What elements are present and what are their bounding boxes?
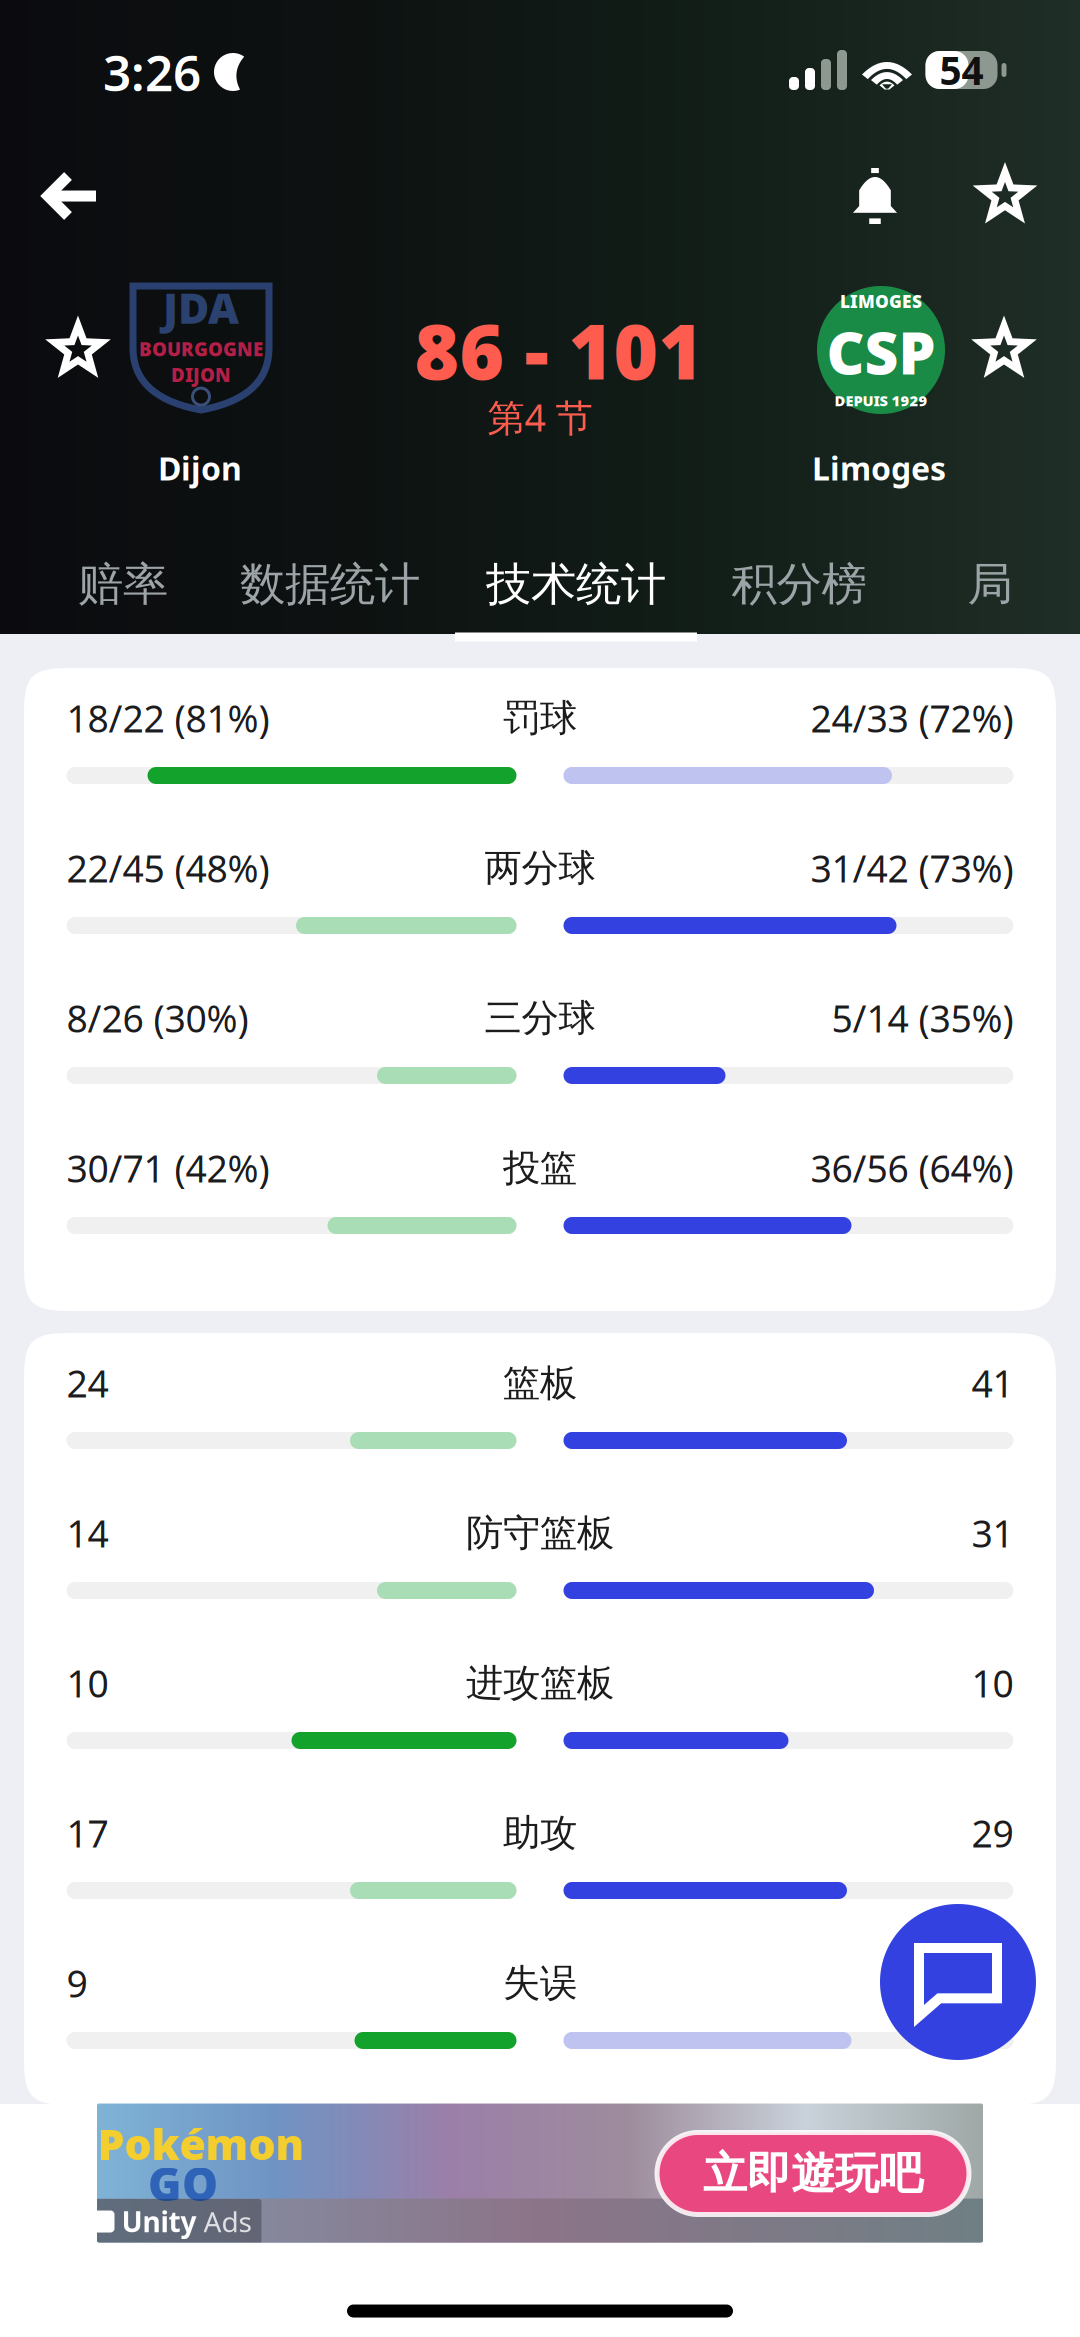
- staticText: 86 - 101: [414, 299, 703, 400]
- staticText: 18/22 (81%): [66, 693, 269, 743]
- staticText: Pokémon: [97, 2115, 304, 2172]
- staticText: JDA: [163, 279, 239, 336]
- staticText: 22/45 (48%): [66, 843, 269, 893]
- staticText: 罚球: [503, 695, 577, 741]
- staticText: GO: [148, 2153, 218, 2214]
- staticText: 技术统计: [486, 557, 666, 612]
- staticText: 5/14 (35%): [831, 993, 1013, 1043]
- staticText: Ads: [203, 2203, 251, 2240]
- button[interactable]: Back: [14, 142, 130, 250]
- staticText: 29: [971, 1808, 1013, 1858]
- staticText: 三分球: [484, 995, 595, 1041]
- button[interactable]: 数据统计: [200, 536, 460, 641]
- button[interactable]: Favourite: [952, 142, 1058, 250]
- button[interactable]: Chat: [880, 1904, 1036, 2060]
- staticText: Dijon: [158, 447, 242, 489]
- staticText: BOURGOGNE: [139, 336, 263, 361]
- staticText: DEPUIS 1929: [834, 391, 927, 410]
- staticText: 9: [66, 1958, 87, 2008]
- staticText: 局: [967, 557, 1012, 612]
- staticText: 3:26: [103, 39, 201, 105]
- staticText: 54: [939, 44, 983, 96]
- staticText: 17: [66, 1808, 108, 1858]
- staticText: 41: [971, 1358, 1013, 1408]
- staticText: 积分榜: [731, 557, 866, 612]
- staticText: 14: [66, 1508, 108, 1558]
- staticText: 24: [66, 1358, 108, 1408]
- staticText: 10: [971, 1658, 1013, 1708]
- button[interactable]: Advertisement: Pokémon GO: [97, 2103, 983, 2242]
- staticText: 30/71 (42%): [66, 1143, 269, 1193]
- staticText: 进攻篮板: [466, 1660, 614, 1706]
- staticText: 36/56 (64%): [810, 1143, 1013, 1193]
- staticText: 篮板: [503, 1360, 577, 1406]
- staticText: 第4 节: [487, 392, 592, 442]
- staticText: 24/33 (72%): [810, 693, 1013, 743]
- staticText: Limoges: [812, 447, 946, 489]
- button[interactable]: 积分榜: [669, 536, 929, 641]
- button[interactable]: Notifications: [822, 142, 928, 250]
- staticText: 立即遊玩吧: [703, 2146, 923, 2200]
- staticText: 31: [971, 1508, 1013, 1558]
- button[interactable]: 赔率: [0, 536, 253, 641]
- staticText: 防守篮板: [466, 1510, 614, 1556]
- staticText: 数据统计: [240, 557, 420, 612]
- staticText: 两分球: [484, 845, 595, 891]
- staticText: 8/26 (30%): [66, 993, 248, 1043]
- staticText: 10: [66, 1658, 108, 1708]
- staticText: 投篮: [503, 1145, 577, 1191]
- button[interactable]: 技术统计: [446, 536, 706, 641]
- staticText: CSP: [826, 313, 935, 391]
- staticText: Unity: [121, 2203, 196, 2240]
- button[interactable]: 局: [860, 536, 1080, 641]
- staticText: 助攻: [503, 1810, 577, 1856]
- staticText: DIJON: [171, 362, 231, 387]
- button[interactable]: Follow Dijon: [26, 298, 130, 402]
- staticText: LIMOGES: [840, 290, 922, 313]
- staticText: 失误: [503, 1960, 577, 2006]
- button[interactable]: Follow Limoges: [952, 298, 1056, 402]
- staticText: 31/42 (73%): [810, 843, 1013, 893]
- staticText: 赔率: [78, 557, 168, 612]
- staticText: 9: [992, 1958, 1013, 2008]
